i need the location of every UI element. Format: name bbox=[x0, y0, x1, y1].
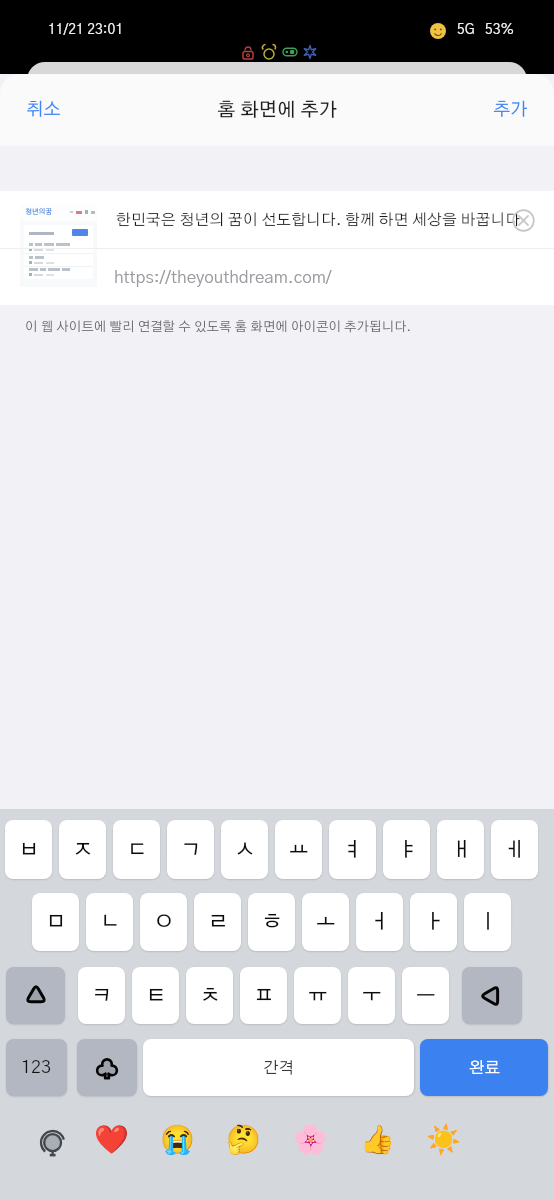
button[interactable]: ㅜ bbox=[348, 967, 395, 1024]
staticText: ㅇ bbox=[154, 912, 174, 932]
staticText: 123 bbox=[21, 1059, 52, 1077]
button[interactable]: Language bbox=[36, 1126, 70, 1160]
button[interactable]: ㅠ bbox=[294, 967, 341, 1024]
staticText: 👍 bbox=[360, 1123, 395, 1156]
button[interactable]: 123 bbox=[6, 1039, 67, 1096]
staticText: 추가 bbox=[493, 101, 528, 119]
button[interactable]: ㅇ bbox=[140, 893, 187, 951]
button[interactable]: ㅛ bbox=[275, 820, 322, 879]
button[interactable]: Sun bbox=[425, 1121, 461, 1157]
staticText: ㅕ bbox=[343, 840, 363, 860]
button[interactable]: ㄷ bbox=[113, 820, 160, 879]
staticText: ㅍ bbox=[254, 986, 274, 1006]
button[interactable]: 간격 bbox=[143, 1039, 414, 1096]
button[interactable]: 취소 bbox=[0, 91, 81, 129]
staticText: https://theyouthdream.com/ bbox=[114, 269, 332, 286]
staticText: 🤔 bbox=[226, 1123, 261, 1156]
button[interactable]: ㅌ bbox=[132, 967, 179, 1024]
staticText: 😭 bbox=[160, 1123, 195, 1156]
button[interactable]: ㅡ bbox=[402, 967, 449, 1024]
staticText: ㄴ bbox=[100, 912, 120, 932]
button[interactable]: ㅣ bbox=[464, 893, 511, 951]
staticText: 홈 화면에 추가 bbox=[217, 101, 338, 120]
button[interactable]: 완료 bbox=[420, 1039, 548, 1096]
button[interactable]: ㅍ bbox=[240, 967, 287, 1024]
button[interactable]: ㅊ bbox=[186, 967, 233, 1024]
button[interactable]: 추가 bbox=[473, 91, 554, 129]
staticText: ㅣ bbox=[478, 912, 498, 932]
button[interactable]: ㅑ bbox=[383, 820, 430, 879]
staticText: ㅎ bbox=[262, 912, 282, 932]
staticText: ㅁ bbox=[46, 912, 66, 932]
staticText: ㅐ bbox=[451, 840, 471, 860]
button[interactable]: 한민국은 청년의 꿈이 선도합니다. 함께 하면 세상을 바꿉니다 bbox=[0, 191, 554, 248]
button[interactable]: ㄹ bbox=[194, 893, 241, 951]
staticText: 53% bbox=[485, 23, 515, 37]
staticText: 완료 bbox=[469, 1060, 500, 1076]
button[interactable]: ㅕ bbox=[329, 820, 376, 879]
button[interactable]: ㅏ bbox=[410, 893, 457, 951]
staticText: ㅛ bbox=[289, 840, 309, 860]
button[interactable]: ㅎ bbox=[248, 893, 295, 951]
staticText: 🌸 bbox=[293, 1123, 328, 1156]
staticText: ㄱ bbox=[181, 840, 201, 860]
button[interactable]: ㅈ bbox=[59, 820, 106, 879]
staticText: ㅓ bbox=[370, 912, 390, 932]
staticText: 5G bbox=[457, 23, 475, 37]
staticText: ㄷ bbox=[127, 840, 147, 860]
button[interactable]: https://theyouthdream.com/ bbox=[0, 249, 554, 305]
button[interactable]: Emoji bbox=[77, 1039, 137, 1096]
staticText: ㅔ bbox=[505, 840, 525, 860]
button[interactable]: ㅓ bbox=[356, 893, 403, 951]
staticText: ㅋ bbox=[92, 986, 112, 1006]
staticText: 청년의꿈 bbox=[25, 208, 53, 215]
button[interactable]: ㅋ bbox=[78, 967, 125, 1024]
staticText: ㅌ bbox=[146, 986, 166, 1006]
staticText: ❤️ bbox=[94, 1123, 129, 1156]
button[interactable]: Thinking bbox=[225, 1121, 261, 1157]
button[interactable]: Crying bbox=[159, 1121, 195, 1157]
button[interactable]: Backspace bbox=[462, 967, 522, 1024]
staticText: ㅜ bbox=[362, 986, 382, 1006]
button[interactable]: Shift bbox=[6, 967, 65, 1024]
button[interactable]: ㅗ bbox=[302, 893, 349, 951]
staticText: ㅏ bbox=[424, 912, 444, 932]
staticText: ㅗ bbox=[316, 912, 336, 932]
staticText: ㅠ bbox=[308, 986, 328, 1006]
staticText: 이 웹 사이트에 빨리 연결할 수 있도록 홈 화면에 아이콘이 추가됩니다. bbox=[25, 321, 411, 334]
button[interactable]: ㅁ bbox=[32, 893, 79, 951]
staticText: 11/21 23:01 bbox=[48, 23, 124, 37]
button[interactable]: Heart bbox=[93, 1121, 129, 1157]
staticText: ㅑ bbox=[397, 840, 417, 860]
button[interactable]: Blossom bbox=[292, 1121, 328, 1157]
staticText: ㅊ bbox=[200, 986, 220, 1006]
button[interactable]: Thumbs up bbox=[359, 1121, 395, 1157]
staticText: ☀️ bbox=[426, 1123, 461, 1156]
staticText: ㅂ bbox=[19, 840, 39, 860]
button[interactable]: ㅔ bbox=[491, 820, 538, 879]
staticText: ㅡ bbox=[416, 986, 436, 1006]
staticText: ㅅ bbox=[235, 840, 255, 860]
button[interactable]: ㄴ bbox=[86, 893, 133, 951]
button[interactable]: ㅅ bbox=[221, 820, 268, 879]
button[interactable]: ㄱ bbox=[167, 820, 214, 879]
button[interactable]: ㅂ bbox=[5, 820, 52, 879]
button[interactable]: ㅐ bbox=[437, 820, 484, 879]
staticText: 취소 bbox=[26, 101, 61, 119]
staticText: 간격 bbox=[263, 1060, 294, 1076]
button[interactable]: Clear text bbox=[505, 202, 541, 238]
staticText: ㅈ bbox=[73, 840, 93, 860]
staticText: ㄹ bbox=[208, 912, 228, 932]
staticText: 한민국은 청년의 꿈이 선도합니다. 함께 하면 세상을 바꿉니다 bbox=[116, 213, 521, 229]
